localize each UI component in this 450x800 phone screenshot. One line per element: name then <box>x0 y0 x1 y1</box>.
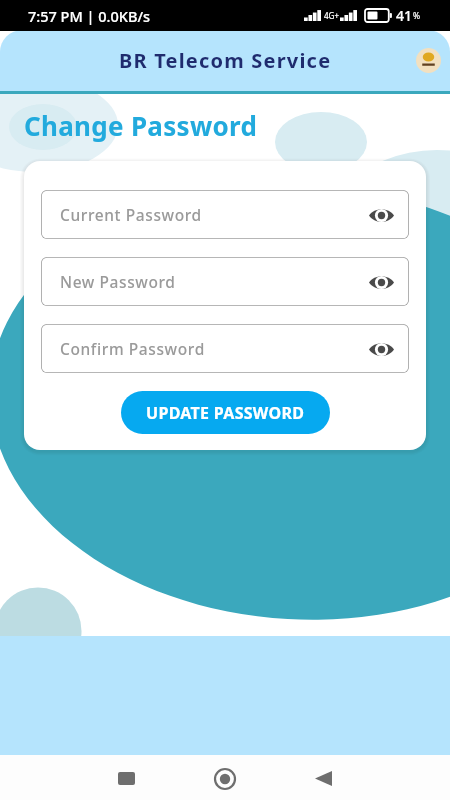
staticText: 41 <box>396 6 413 25</box>
staticText: BR Telecom Service <box>119 47 332 74</box>
button[interactable]: Profile <box>416 48 441 73</box>
staticText: 7:57 PM | 0.0KB/s <box>28 6 151 26</box>
staticText: 4G+ <box>324 10 339 21</box>
staticText: Change Password <box>24 108 258 143</box>
button[interactable]: Recent apps <box>104 756 148 800</box>
button[interactable]: Toggle password visibility <box>367 268 395 296</box>
button[interactable]: Home <box>202 756 247 800</box>
button[interactable]: Confirm Password <box>41 324 409 373</box>
button[interactable]: New Password <box>41 257 409 306</box>
button[interactable]: Current Password <box>41 190 409 239</box>
button[interactable]: UPDATE PASSWORD <box>121 391 330 434</box>
button[interactable]: Toggle password visibility <box>367 335 395 363</box>
staticText: UPDATE PASSWORD <box>146 402 305 424</box>
button[interactable]: Back <box>301 756 346 800</box>
staticText: Current Password <box>60 204 202 225</box>
button[interactable]: Toggle password visibility <box>367 201 395 229</box>
staticText: % <box>413 10 421 22</box>
staticText: New Password <box>60 271 176 292</box>
staticText: Confirm Password <box>60 338 205 359</box>
